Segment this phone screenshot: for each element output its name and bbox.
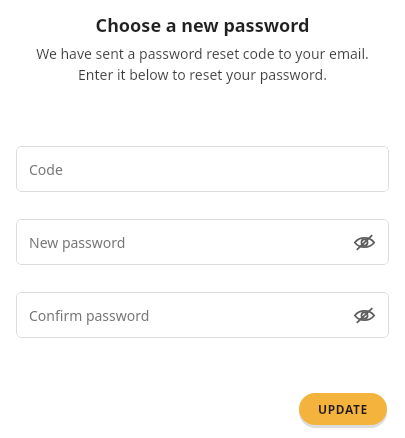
button[interactable]: Code xyxy=(16,146,389,192)
staticText: Choose a new password xyxy=(8,13,397,38)
staticText: We have sent a password reset code to yo… xyxy=(8,44,397,63)
staticText: Confirm password xyxy=(29,306,150,325)
button[interactable]: Show password xyxy=(350,301,378,329)
button[interactable]: UPDATE xyxy=(299,393,387,425)
staticText: UPDATE xyxy=(318,401,368,417)
staticText: New password xyxy=(29,233,126,252)
button[interactable]: New password xyxy=(16,219,389,265)
button[interactable]: Show password xyxy=(350,228,378,256)
staticText: Code xyxy=(29,160,63,179)
staticText: Enter it below to reset your password. xyxy=(8,65,397,84)
button[interactable]: Confirm password xyxy=(16,292,389,338)
